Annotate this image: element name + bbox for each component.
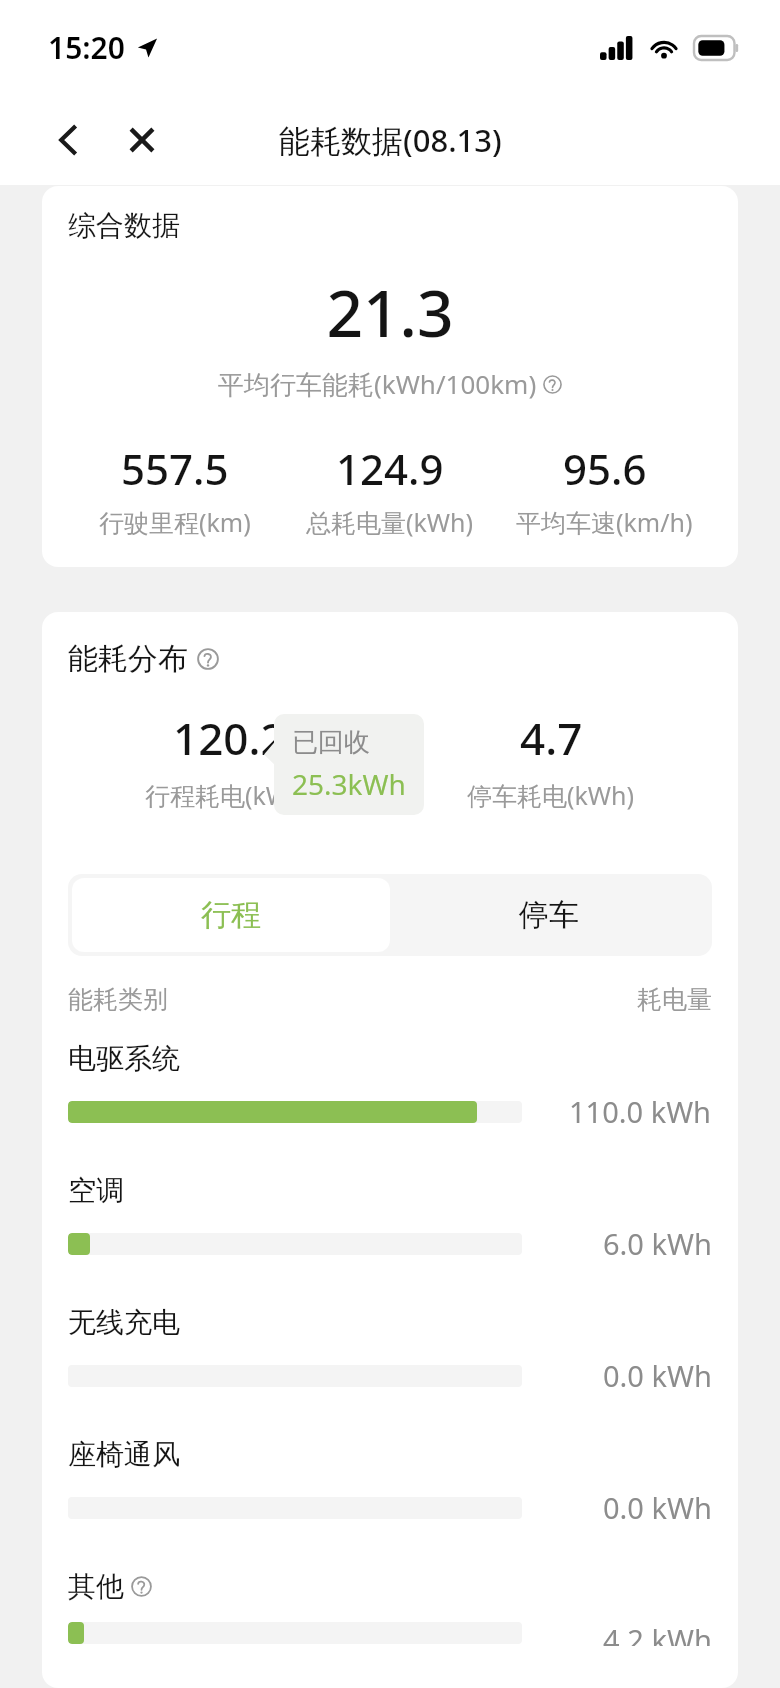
staticText: 557.5 <box>121 440 229 497</box>
staticText: 综合数据 <box>68 208 180 243</box>
button[interactable]: Close <box>114 112 170 168</box>
staticText: 0.0 kWh <box>603 1356 712 1395</box>
staticText: 空调 <box>68 1173 124 1208</box>
staticText: 15:20 <box>48 27 125 68</box>
staticText: 能耗类别 <box>68 984 168 1015</box>
staticText: 行驶里程(km) <box>99 505 251 539</box>
staticText: 0.0 kWh <box>603 1488 712 1527</box>
button[interactable]: 行程 <box>72 878 390 952</box>
staticText: 行程 <box>201 896 261 934</box>
staticText: 停车 <box>519 896 579 934</box>
staticText: 停车耗电(kWh) <box>467 778 635 812</box>
staticText: 行程耗电(kWh) <box>145 778 313 812</box>
staticText: 4.7 <box>520 708 583 768</box>
staticText: 平均车速(km/h) <box>516 505 693 539</box>
staticText: 其他 <box>68 1569 124 1604</box>
staticText: 能耗分布 <box>68 640 188 678</box>
staticText: 21.3 <box>68 269 712 356</box>
staticText: 耗电量 <box>637 984 712 1015</box>
staticText: 25.3kWh <box>292 765 406 803</box>
staticText: 95.6 <box>563 440 647 497</box>
staticText: 120.2 <box>173 708 286 768</box>
staticText: 能耗数据(08.13) <box>279 119 502 161</box>
staticText: 平均行车能耗(kWh/100km) <box>218 366 537 402</box>
staticText: 4.2 kWh <box>603 1620 712 1646</box>
staticText: 124.9 <box>336 440 444 497</box>
staticText: 6.0 kWh <box>603 1224 712 1263</box>
staticText: 总耗电量(kWh) <box>306 505 474 539</box>
staticText: 座椅通风 <box>68 1437 180 1472</box>
staticText: 已回收 <box>292 726 370 759</box>
button[interactable]: Back <box>40 112 96 168</box>
button[interactable]: 停车 <box>390 878 708 952</box>
staticText: 110.0 kWh <box>569 1092 712 1131</box>
staticText: 无线充电 <box>68 1305 180 1340</box>
staticText: 电驱系统 <box>68 1041 180 1076</box>
